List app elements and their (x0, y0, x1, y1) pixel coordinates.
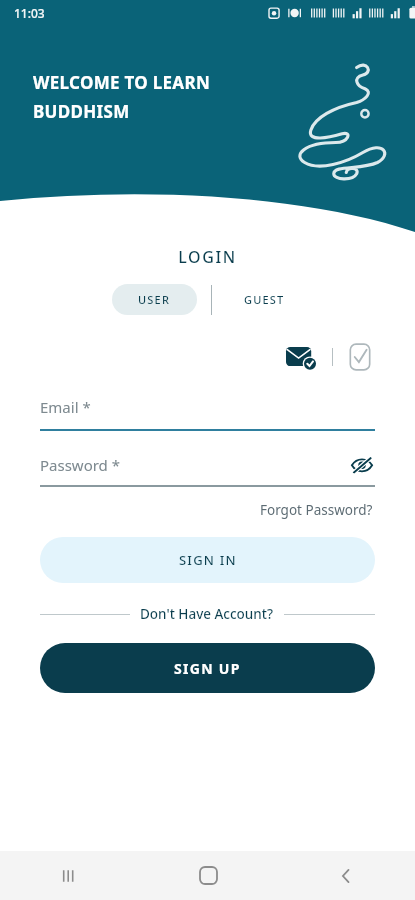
button[interactable]: Home (139, 851, 277, 900)
button[interactable]: Forgot Password? (258, 499, 375, 521)
button[interactable]: USER (112, 284, 197, 315)
staticText: WELCOME TO LEARN (33, 71, 211, 94)
staticText: Password * (40, 455, 121, 475)
staticText: USER (138, 292, 171, 307)
button[interactable]: Recent apps (0, 851, 139, 900)
button[interactable]: Sign in with phone (345, 339, 375, 375)
staticText: SIGN IN (179, 551, 237, 569)
button[interactable]: SIGN UP (40, 643, 375, 693)
staticText: BUDDHISM (33, 100, 130, 123)
staticText: Don't Have Account? (140, 605, 274, 623)
staticText: LOGIN (0, 246, 415, 268)
button[interactable]: SIGN IN (40, 537, 375, 583)
button[interactable]: Sign in with email (282, 341, 320, 373)
button[interactable]: GUEST (226, 284, 303, 315)
staticText: GUEST (244, 292, 285, 307)
button[interactable]: Show password (349, 455, 375, 475)
staticText: Email * (40, 397, 91, 417)
staticText: Forgot Password? (260, 501, 373, 519)
staticText: 11:03 (14, 5, 45, 21)
button[interactable]: Back (277, 851, 415, 900)
staticText: SIGN UP (174, 659, 241, 678)
